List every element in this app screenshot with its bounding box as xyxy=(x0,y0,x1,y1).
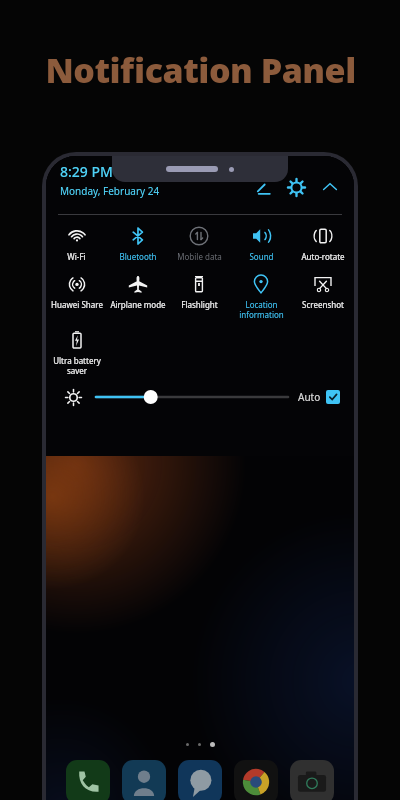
button[interactable] xyxy=(122,760,166,800)
staticText: Location information xyxy=(239,299,284,320)
button[interactable]: Settings xyxy=(282,173,310,201)
button[interactable]: Flashlight xyxy=(168,272,230,310)
button[interactable]: Huawei Share xyxy=(46,272,107,310)
staticText: Bluetooth xyxy=(119,251,157,262)
button[interactable]: Sound xyxy=(230,224,292,262)
button[interactable]: Collapse xyxy=(316,173,344,201)
button[interactable]: Location information xyxy=(230,272,292,320)
button[interactable] xyxy=(234,760,278,800)
staticText: 8:29 PM xyxy=(60,162,113,181)
staticText: Monday, February 24 xyxy=(60,184,160,198)
button[interactable] xyxy=(96,386,288,408)
button[interactable] xyxy=(66,760,110,800)
staticText: Flashlight xyxy=(181,299,218,310)
staticText: Airplane mode xyxy=(110,299,166,310)
staticText: Screenshot xyxy=(302,299,344,310)
staticText: Notification Panel xyxy=(45,47,356,93)
button[interactable]: Bluetooth xyxy=(107,224,168,262)
button[interactable]: Auto xyxy=(298,390,340,404)
staticText: Mobile data xyxy=(177,251,222,262)
button[interactable]: Airplane mode xyxy=(107,272,168,310)
button[interactable]: Mobile data xyxy=(168,224,230,262)
staticText: Auto-rotate xyxy=(301,251,345,262)
button[interactable]: Screenshot xyxy=(292,272,354,310)
staticText: Ultra battery saver xyxy=(53,355,101,376)
button[interactable] xyxy=(290,760,334,800)
staticText: Huawei Share xyxy=(51,299,103,310)
button[interactable]: Edit xyxy=(250,174,276,200)
button[interactable]: Auto-rotate xyxy=(292,224,354,262)
button[interactable] xyxy=(178,760,222,800)
button[interactable]: Ultra battery saver xyxy=(46,328,108,376)
staticText: Sound xyxy=(249,251,274,262)
button[interactable]: Wi-Fi xyxy=(46,224,107,262)
staticText: Wi-Fi xyxy=(67,251,86,262)
staticText: Auto xyxy=(298,390,321,404)
button[interactable]: Brightness xyxy=(60,384,86,410)
